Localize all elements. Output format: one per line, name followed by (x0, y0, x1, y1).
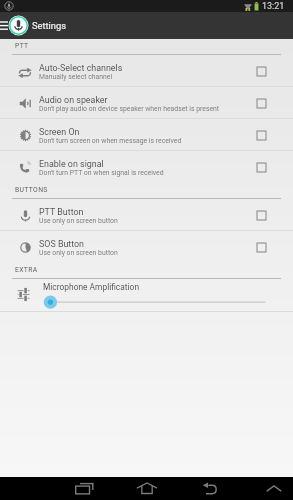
button[interactable]: PTT Button checkbox (241, 199, 293, 231)
staticText: Screen On (39, 127, 80, 137)
button[interactable]: Screen On (0, 119, 293, 151)
staticText: BUTTONS (15, 186, 48, 194)
staticText: Enable on signal (39, 159, 104, 169)
button[interactable]: Screen On checkbox (241, 119, 293, 151)
button[interactable]: SOS Button checkbox (241, 231, 293, 263)
button[interactable]: Microphone Amplification (0, 279, 293, 311)
staticText: SOS Button (39, 239, 85, 249)
button[interactable]: Enable on signal (0, 151, 293, 183)
button[interactable]: Hide navigation (251, 477, 293, 500)
staticText: PTT Button (39, 207, 84, 217)
staticText: Use only on screen button (39, 217, 118, 225)
staticText: PTT (15, 42, 29, 50)
staticText: Settings (32, 20, 66, 31)
staticText: Manually select channel (39, 73, 113, 81)
staticText: 13:21 (262, 1, 285, 12)
staticText: Auto-Select channels (39, 63, 123, 73)
staticText: Use only on screen button (39, 249, 118, 257)
button[interactable]: Navigate up (0, 12, 8, 39)
button[interactable]: Audio on speaker (0, 87, 293, 119)
button[interactable]: Recent apps (61, 477, 107, 500)
button[interactable]: Back (187, 477, 233, 500)
staticText: Don't play audio on device speaker when … (39, 105, 220, 113)
staticText: Don't turn PTT on when signal is receive… (39, 169, 164, 177)
button[interactable]: Enable on signal checkbox (241, 151, 293, 183)
button[interactable]: Audio on speaker checkbox (241, 87, 293, 119)
button[interactable]: Auto-Select channels (0, 55, 293, 87)
button[interactable]: Home (124, 477, 170, 500)
staticText: Don't turn screen on when message is rec… (39, 137, 182, 145)
button[interactable]: PTT Button (0, 199, 293, 231)
staticText: Microphone Amplification (43, 282, 140, 292)
staticText: EXTRA (15, 266, 38, 274)
staticText: Audio on speaker (39, 95, 108, 105)
button[interactable]: Auto-Select channels checkbox (241, 55, 293, 87)
button[interactable]: SOS Button (0, 231, 293, 263)
